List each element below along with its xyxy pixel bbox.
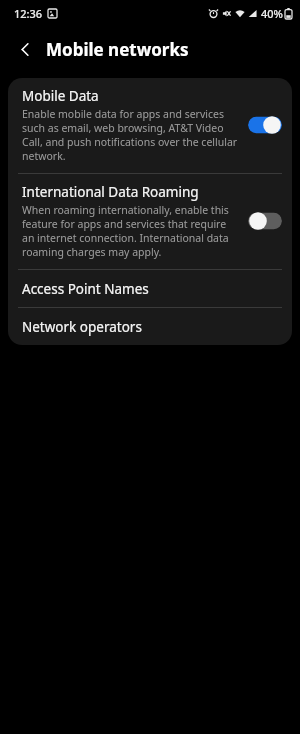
staticText: Network operators bbox=[22, 318, 142, 336]
staticText: 40% bbox=[261, 6, 283, 21]
button[interactable]: Access Point Names bbox=[8, 270, 292, 307]
button[interactable]: Mobile Data bbox=[8, 78, 292, 173]
staticText: When roaming internationally, enable thi… bbox=[22, 203, 240, 259]
button[interactable]: Network operators bbox=[8, 308, 292, 345]
button[interactable]: On bbox=[248, 115, 282, 135]
staticText: International Data Roaming bbox=[22, 183, 199, 201]
staticText: Mobile Data bbox=[22, 87, 99, 105]
staticText: Mobile networks bbox=[46, 38, 189, 61]
staticText: 12:36 bbox=[14, 6, 43, 21]
button[interactable]: Back bbox=[8, 32, 42, 66]
button[interactable]: Off bbox=[248, 211, 282, 231]
staticText: Enable mobile data for apps and services… bbox=[22, 107, 240, 163]
button[interactable]: International Data Roaming bbox=[8, 174, 292, 269]
staticText: Access Point Names bbox=[22, 280, 149, 298]
